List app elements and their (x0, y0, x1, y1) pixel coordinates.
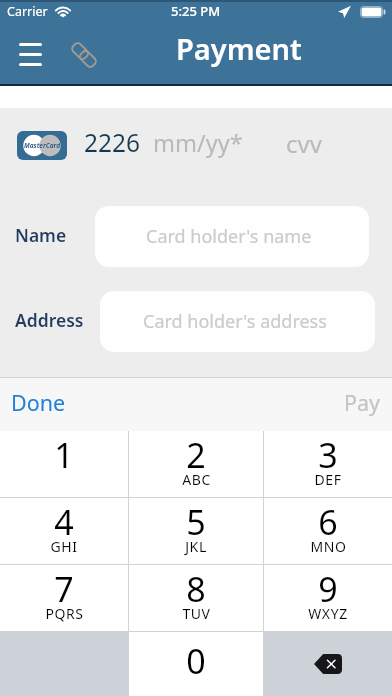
staticText: Card holder's name (146, 224, 312, 249)
button[interactable]: 7 (0, 565, 128, 631)
button[interactable]: 8 (129, 565, 263, 631)
staticText: MasterCard (24, 141, 60, 150)
staticText: TUV (182, 604, 211, 623)
staticText: 3 (318, 432, 338, 478)
staticText: Address (15, 308, 84, 332)
staticText: 2226 (84, 126, 141, 159)
staticText: JKL (185, 537, 207, 556)
button[interactable]: Done (3, 380, 74, 425)
button[interactable]: 0 (129, 632, 263, 696)
button[interactable]: 2 (129, 431, 263, 497)
staticText: 1 (54, 432, 74, 478)
staticText: 2 (186, 432, 206, 478)
staticText: 4 (54, 499, 74, 545)
staticText: 5 (186, 499, 206, 545)
button[interactable]: Delete (264, 632, 392, 696)
staticText: PQRS (45, 604, 84, 623)
staticText: Payment (176, 29, 302, 68)
button[interactable]: 1 (0, 431, 128, 497)
staticText: 7 (54, 566, 74, 612)
button[interactable]: 4 (0, 498, 128, 564)
button[interactable]: 3 (264, 431, 392, 497)
staticText: Card holder's address (143, 309, 327, 334)
button[interactable]: Card holder's name (95, 206, 369, 267)
button[interactable]: Link (62, 33, 106, 77)
staticText: 9 (318, 566, 338, 612)
button[interactable]: Menu (8, 32, 52, 76)
staticText: cvv (286, 127, 322, 160)
staticText: ABC (182, 470, 211, 489)
button[interactable]: Pay (336, 380, 389, 425)
staticText: 5:25 PM (171, 2, 221, 20)
staticText: mm/yy* (153, 127, 243, 159)
staticText: MNO (310, 537, 347, 556)
staticText: WXYZ (308, 604, 348, 623)
staticText: Done (11, 388, 66, 417)
staticText: Carrier (7, 3, 48, 20)
staticText: 0 (186, 638, 206, 684)
button[interactable]: Card holder's address (100, 291, 375, 352)
staticText: GHI (50, 537, 78, 556)
staticText: 6 (318, 499, 338, 545)
button[interactable]: 9 (264, 565, 392, 631)
button[interactable]: 6 (264, 498, 392, 564)
staticText: 8 (186, 566, 206, 612)
staticText: Pay (344, 388, 381, 417)
staticText: DEF (314, 470, 342, 489)
button[interactable]: 5 (129, 498, 263, 564)
staticText: Name (15, 223, 67, 247)
